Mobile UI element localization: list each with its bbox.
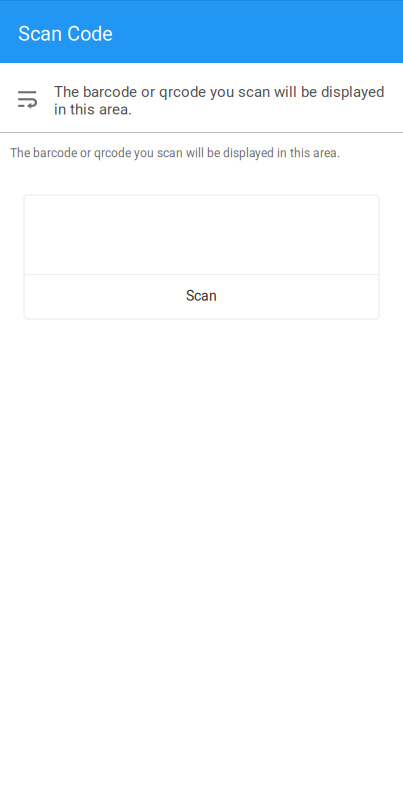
staticText: The barcode or qrcode you scan will be d…: [10, 146, 340, 160]
staticText: Scan Code: [18, 22, 113, 46]
staticText: The barcode or qrcode you scan will be d…: [54, 83, 384, 118]
staticText: Scan: [186, 288, 217, 304]
button[interactable]: Scan: [24, 275, 379, 319]
